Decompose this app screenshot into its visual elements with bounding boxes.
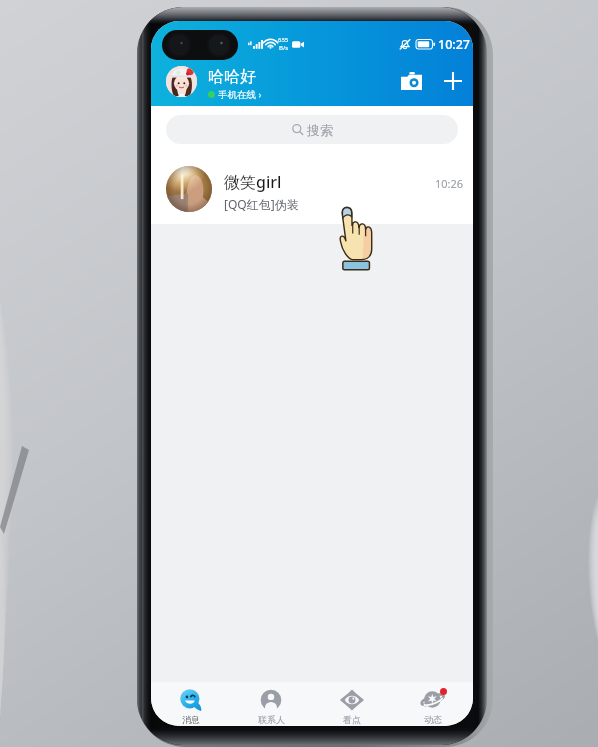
button[interactable]: 搜索 bbox=[166, 115, 458, 144]
staticText: 手机在线 › bbox=[218, 88, 262, 101]
button[interactable]: Add bbox=[436, 64, 470, 98]
staticText: [QQ红包]伪装 bbox=[224, 196, 299, 212]
staticText: 看点 bbox=[343, 714, 361, 725]
button[interactable] bbox=[166, 66, 197, 97]
button[interactable]: 动态 bbox=[392, 682, 473, 726]
staticText: 微笑girl bbox=[224, 171, 282, 193]
staticText: 动态 bbox=[424, 714, 442, 725]
staticText: B/s bbox=[279, 44, 289, 52]
staticText: 655 bbox=[278, 36, 289, 44]
staticText: 哈哈好 bbox=[208, 67, 256, 87]
staticText: 10:27 bbox=[438, 36, 471, 53]
button[interactable]: 消息 bbox=[151, 682, 231, 726]
staticText: 消息 bbox=[182, 714, 200, 725]
staticText: 联系人 bbox=[258, 714, 285, 725]
button[interactable]: Camera bbox=[394, 64, 428, 98]
staticText: 10:26 bbox=[435, 176, 464, 191]
staticText: 搜索 bbox=[307, 122, 333, 138]
button[interactable]: 联系人 bbox=[231, 682, 311, 726]
button[interactable]: 看点 bbox=[311, 682, 392, 726]
button[interactable]: 微笑girl bbox=[151, 153, 473, 224]
